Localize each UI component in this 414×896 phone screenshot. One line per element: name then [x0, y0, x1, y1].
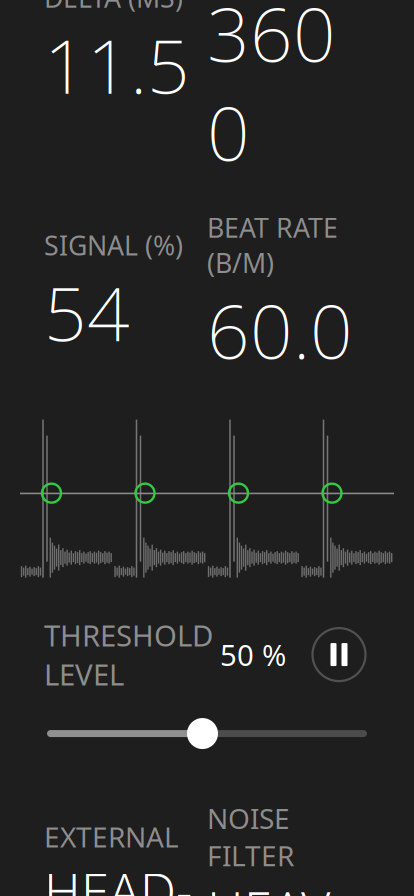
staticText: 60.0 — [207, 280, 353, 380]
staticText: HEADSET — [44, 857, 192, 896]
staticText: 3600 — [207, 0, 336, 182]
button[interactable]: Threshold level — [47, 715, 367, 751]
staticText: 11.5 — [44, 15, 190, 114]
staticText: THRESHOLD LEVEL — [44, 616, 213, 693]
button[interactable]: EXTERNAL — [44, 818, 207, 896]
staticText: BEAT RATE (B/M) — [207, 210, 338, 280]
staticText: NOISE FILTER — [207, 799, 294, 874]
button[interactable]: NOISE FILTER — [207, 799, 370, 896]
staticText: 50 % — [220, 635, 286, 674]
staticText: EXTERNAL — [44, 818, 179, 855]
staticText: SIGNAL (%) — [44, 227, 183, 263]
staticText: HEAVY — [207, 876, 346, 896]
staticText: DELTA (MS) — [44, 0, 183, 15]
button[interactable]: Pause — [308, 624, 370, 686]
staticText: 54 — [44, 263, 130, 362]
